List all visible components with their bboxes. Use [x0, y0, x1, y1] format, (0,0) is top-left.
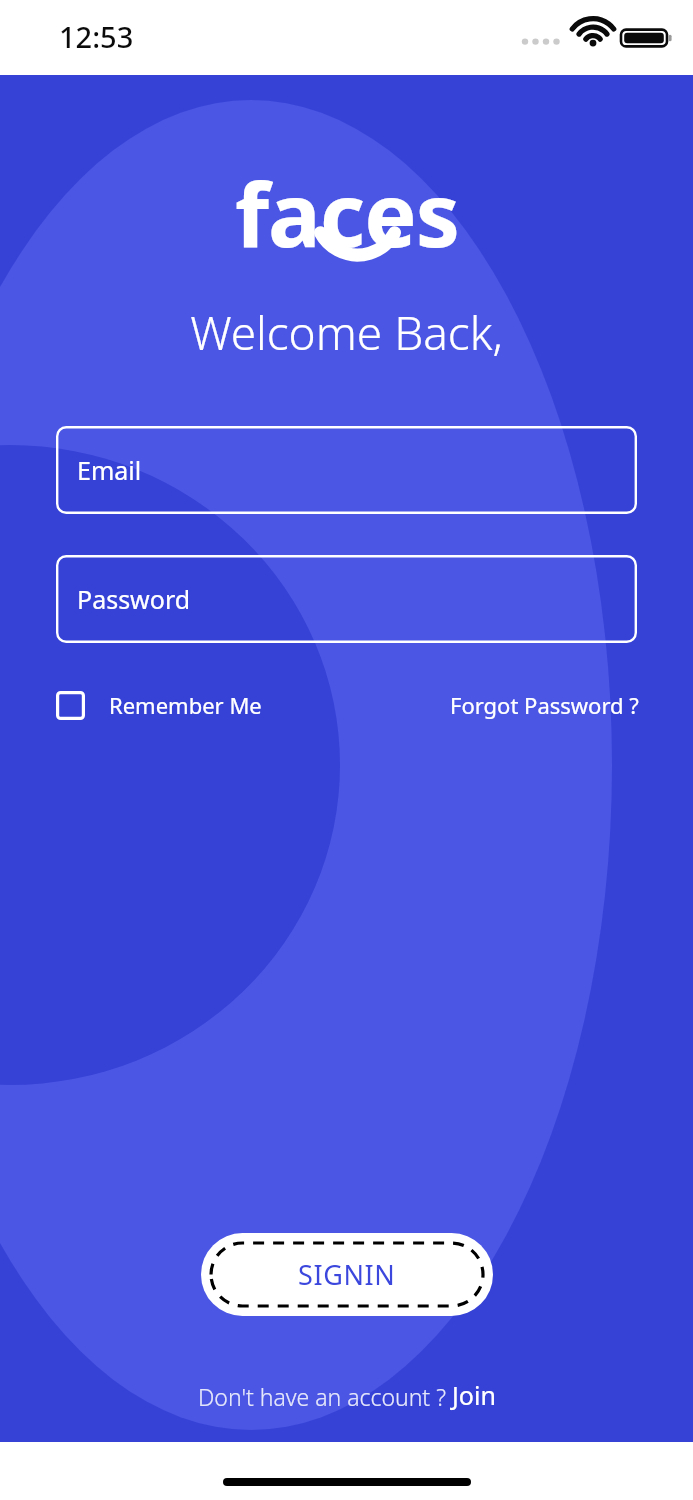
- staticText: Welcome Back,: [190, 301, 503, 364]
- button[interactable]: Remember Me: [56, 690, 262, 720]
- button[interactable]: Email: [56, 426, 637, 514]
- button[interactable]: SIGNIN: [201, 1233, 493, 1316]
- staticText: Remember Me: [109, 690, 262, 720]
- button[interactable]: Password: [56, 555, 637, 643]
- staticText: Email: [77, 453, 142, 487]
- button[interactable]: Don't have an account ?: [198, 1378, 496, 1412]
- button[interactable]: Forgot Password ?: [450, 690, 639, 720]
- staticText: Forgot Password ?: [450, 690, 639, 720]
- staticText: Join: [452, 1378, 496, 1412]
- staticText: faces: [235, 153, 459, 253]
- staticText: Password: [77, 582, 191, 616]
- staticText: 12:53: [59, 17, 134, 56]
- staticText: Don't have an account ?: [198, 1381, 452, 1412]
- staticText: SIGNIN: [298, 1256, 396, 1293]
